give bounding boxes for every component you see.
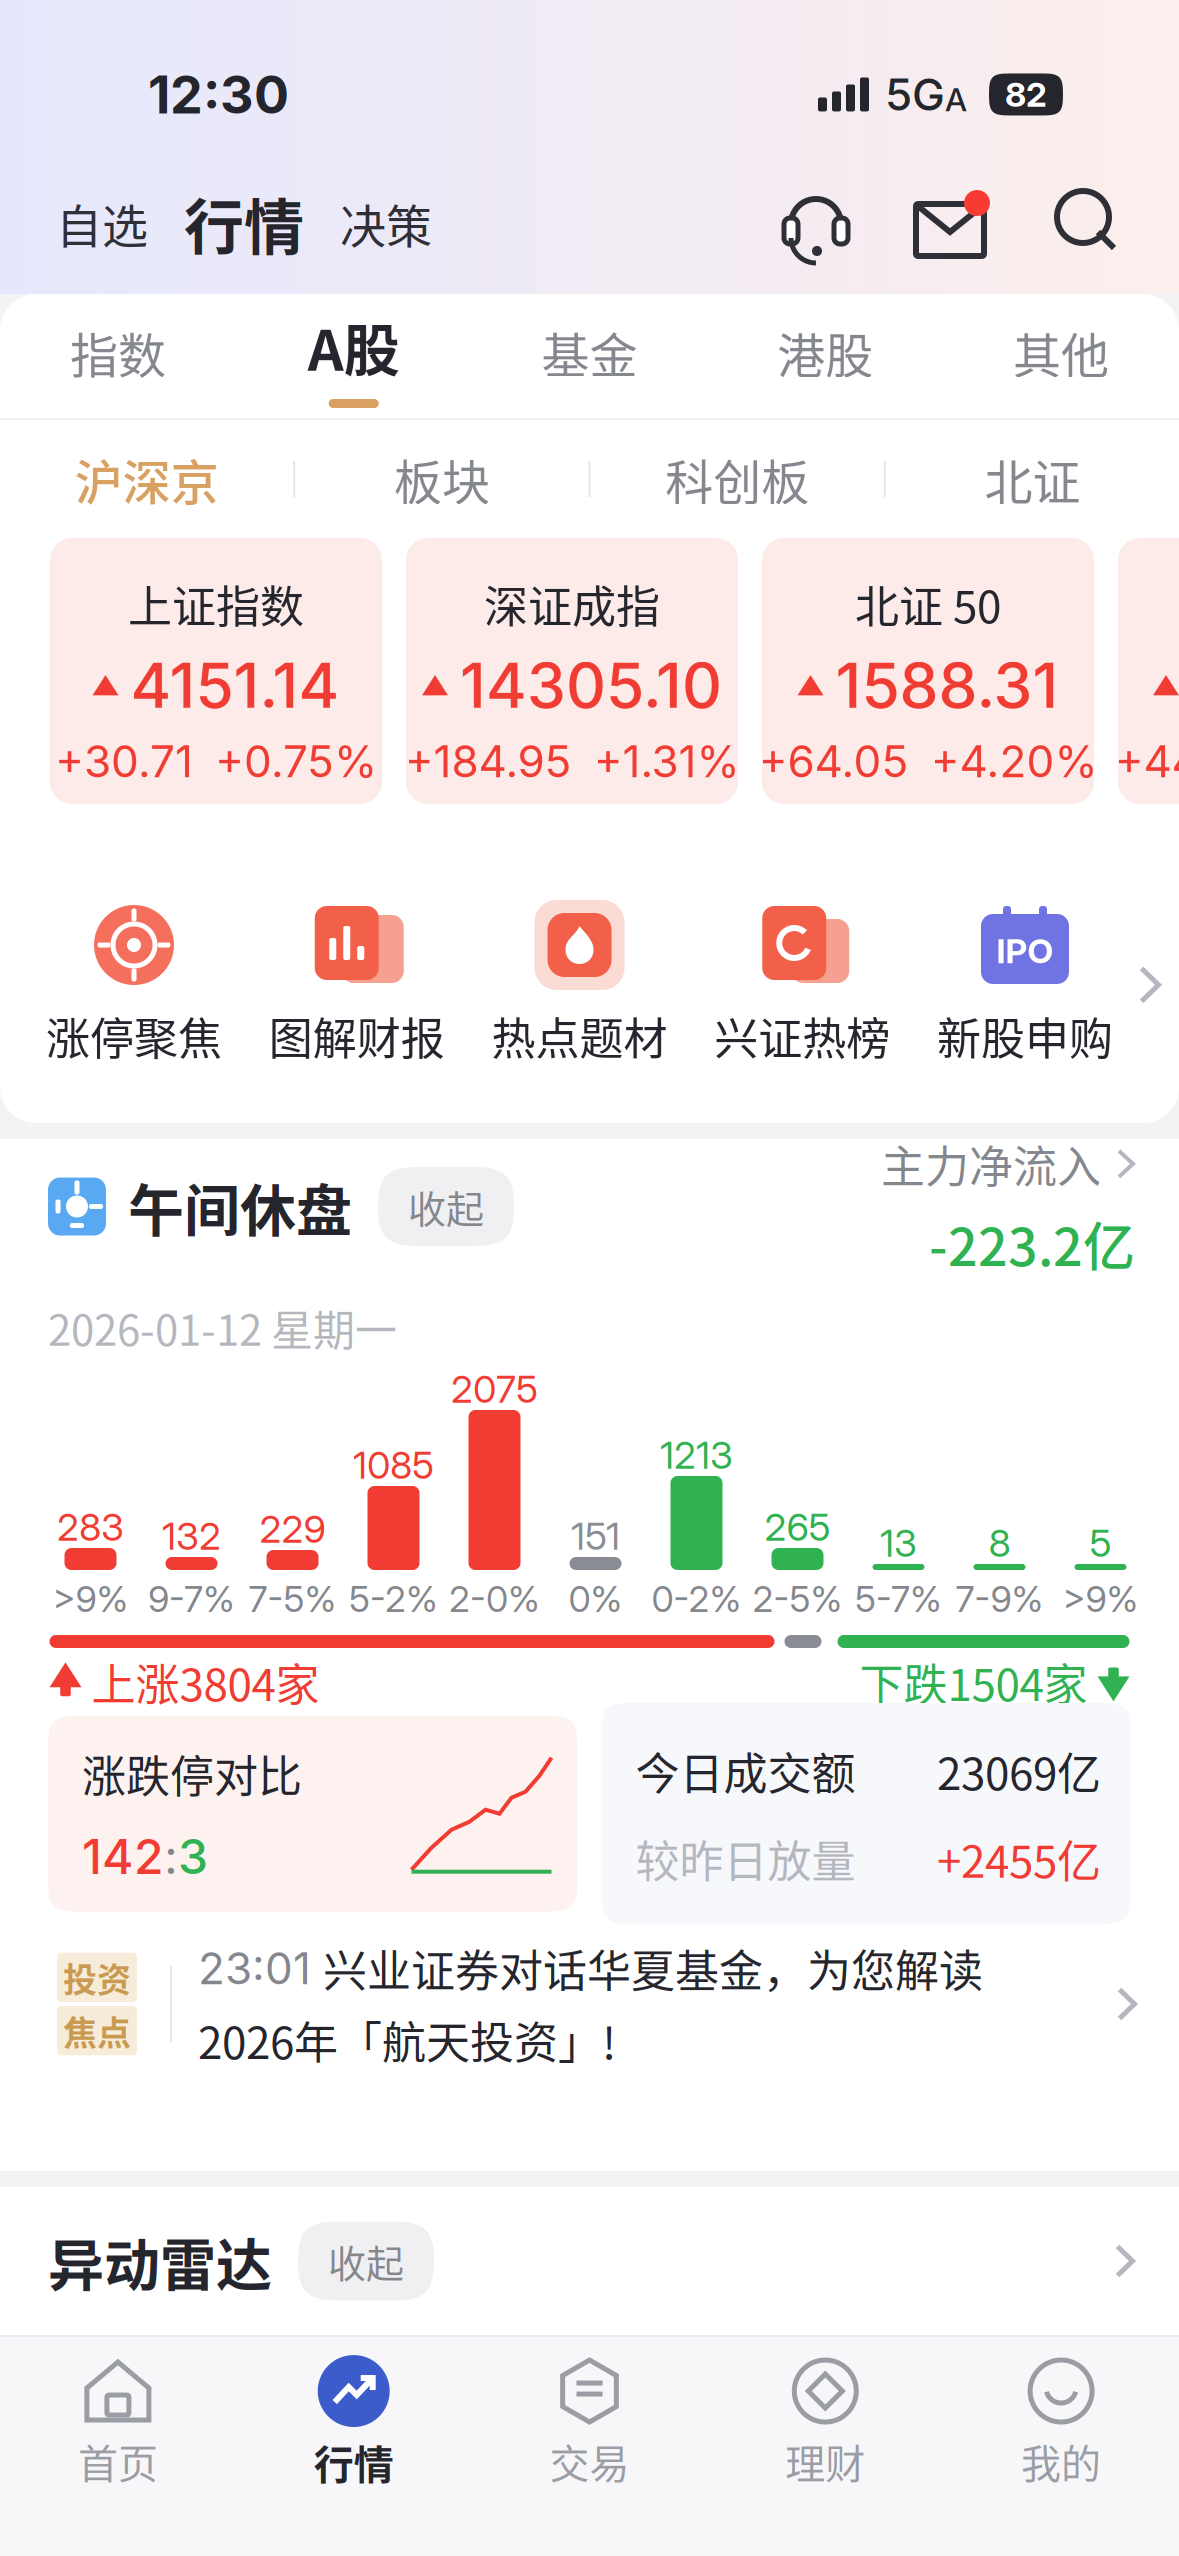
button[interactable]: 行情 <box>236 2355 472 2491</box>
staticText: 交易 <box>549 2432 629 2490</box>
staticText: A股 <box>308 306 400 387</box>
staticText: 5 <box>1089 1520 1111 1566</box>
button[interactable]: 科创板 <box>590 420 884 538</box>
staticText: 265 <box>764 1504 830 1550</box>
staticText: 4151.14 <box>130 648 339 723</box>
button[interactable]: 港股 <box>707 294 943 418</box>
staticText: 5-7% <box>855 1577 942 1621</box>
staticText: >9% <box>1062 1577 1138 1621</box>
button[interactable]: 今日成交额 <box>601 1703 1131 1924</box>
button[interactable]: 涨跌停对比 <box>48 1716 577 1912</box>
staticText: 7-5% <box>248 1577 336 1621</box>
button[interactable]: 北证 50 <box>762 538 1094 804</box>
staticText: +2455亿 <box>937 1827 1101 1890</box>
staticText: 2075 <box>451 1366 538 1412</box>
staticText: 港股 <box>777 317 873 387</box>
staticText: 我的 <box>1021 2432 1101 2490</box>
button[interactable]: 上证指数 <box>50 538 382 804</box>
button[interactable]: 沪深京 <box>0 420 293 538</box>
staticText: 涨跌停对比 <box>82 1742 302 1805</box>
staticText: 5-2% <box>349 1577 438 1621</box>
button[interactable]: 首页 <box>0 2356 236 2490</box>
staticText: 决策 <box>340 190 432 256</box>
staticText: 行情 <box>314 2433 394 2491</box>
staticText: 13 <box>880 1520 917 1566</box>
staticText: 北证 50 <box>855 572 1001 636</box>
button[interactable]: 客服 <box>779 186 853 260</box>
button[interactable]: 图解财报 <box>269 902 445 1068</box>
button[interactable]: 交易 <box>472 2356 707 2490</box>
button[interactable]: 涨停聚焦 <box>46 902 222 1068</box>
staticText: 2026-01-12 星期一 <box>48 1297 397 1358</box>
staticText: 今日成交额 <box>635 1739 855 1803</box>
staticText: 主力净流入 <box>881 1132 1101 1196</box>
staticText: 0% <box>568 1577 622 1621</box>
staticText: 上证指数 <box>128 572 304 636</box>
staticText: 热点题材 <box>491 1004 667 1068</box>
staticText: +4.20% <box>930 735 1097 788</box>
button[interactable]: 理财 <box>707 2356 943 2490</box>
button[interactable]: 行情 <box>148 180 304 266</box>
staticText: 7-9% <box>955 1577 1043 1621</box>
staticText: 新股申购 <box>937 1004 1113 1068</box>
staticText: +184.95 <box>404 735 571 788</box>
staticText: 3 <box>178 1827 208 1886</box>
button[interactable]: 决策 <box>304 190 432 256</box>
button[interactable]: IPO <box>937 902 1113 1068</box>
staticText: 科创板 <box>665 444 809 514</box>
staticText: 焦点 <box>63 2006 131 2055</box>
button[interactable]: 科创 50 <box>1118 538 1179 804</box>
staticText: 2-0% <box>449 1577 540 1621</box>
staticText: 9-7% <box>148 1577 235 1621</box>
button[interactable]: 基金 <box>472 294 707 418</box>
staticText: 上涨3804家 <box>91 1650 319 1714</box>
staticText: IPO <box>996 930 1053 971</box>
button[interactable]: 北证 <box>886 420 1179 538</box>
button[interactable]: 我的 <box>943 2356 1179 2490</box>
staticText: 2026年「航天投资」! <box>198 2008 616 2072</box>
button[interactable]: 消息 <box>853 188 991 258</box>
button[interactable]: 板块 <box>295 420 588 538</box>
staticText: 0-2% <box>651 1577 741 1621</box>
staticText: +30.71 <box>55 735 193 788</box>
button[interactable]: 深证成指 <box>406 538 738 804</box>
staticText: 图解财报 <box>269 1004 445 1068</box>
staticText: 指数 <box>70 317 166 387</box>
staticText: 较昨日放量 <box>635 1827 855 1890</box>
button[interactable]: A股 <box>236 294 472 418</box>
staticText: 8 <box>988 1520 1010 1566</box>
staticText: +0.75% <box>215 735 377 788</box>
staticText: 151 <box>571 1513 620 1559</box>
staticText: : <box>164 1827 178 1886</box>
staticText: 下跌1504家 <box>859 1650 1087 1714</box>
button[interactable]: 投资 <box>0 1909 1179 2099</box>
staticText: 132 <box>162 1513 221 1559</box>
staticText: 兴证热榜 <box>714 1004 890 1068</box>
staticText: -223.2亿 <box>929 1206 1135 1281</box>
staticText: 82 <box>1005 74 1047 115</box>
staticText: 收起 <box>408 1179 484 1234</box>
staticText: 行情 <box>184 180 304 266</box>
staticText: 23:01 <box>198 1941 323 1995</box>
button[interactable]: 指数 <box>0 294 236 418</box>
button[interactable]: 其他 <box>943 294 1179 418</box>
button[interactable]: 自选 <box>56 190 148 256</box>
staticText: 14305.10 <box>460 648 722 723</box>
staticText: >9% <box>52 1577 128 1621</box>
staticText: 板块 <box>394 444 490 514</box>
staticText: 142 <box>82 1827 164 1886</box>
staticText: 自选 <box>56 190 148 256</box>
staticText: 异动雷达 <box>48 2220 272 2302</box>
button[interactable]: 兴证热榜 <box>714 902 890 1068</box>
button[interactable]: 热点题材 <box>491 902 667 1068</box>
button[interactable]: 主力净流入 <box>881 1132 1135 1281</box>
button[interactable]: 搜索 <box>991 189 1123 257</box>
staticText: 涨停聚焦 <box>46 1004 222 1068</box>
staticText: 投资 <box>63 1953 131 2002</box>
staticText: 兴业证券对话华夏基金，为您解读 <box>323 1936 983 2000</box>
button[interactable]: 异动雷达 <box>0 2186 1179 2336</box>
staticText: 12:30 <box>148 63 289 126</box>
staticText: +44.05 <box>1114 735 1179 788</box>
staticText: +1.31% <box>593 735 739 788</box>
button[interactable]: 收起 <box>378 1167 514 1246</box>
